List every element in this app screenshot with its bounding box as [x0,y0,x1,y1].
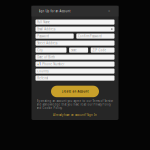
staticText: Full Name [37,20,50,24]
staticText: Sign Up for an Account [38,9,70,13]
staticText: Email Address [37,27,55,31]
staticText: Password [37,34,49,38]
staticText: Already have an account? Sign In [53,113,97,117]
staticText: Phone Number [42,62,64,66]
staticText: State [71,48,77,52]
staticText: Confirm Password [78,34,102,38]
staticText: Date of Birth [37,55,55,59]
staticText: +1 [37,62,41,66]
staticText: Create an Account [61,90,88,93]
button[interactable]: Create an Account [51,86,99,97]
button[interactable]: Already have an account? Sign In [53,113,97,117]
staticText: Country [37,69,48,73]
staticText: Referral [37,76,48,80]
staticText: ZIP Code [92,48,106,52]
staticText: City [37,48,42,52]
staticText: By creating an account you agree to our … [36,99,113,110]
staticText: ✕ [108,10,110,13]
button[interactable]: Close [106,9,111,14]
staticText: Street Address [37,41,57,45]
